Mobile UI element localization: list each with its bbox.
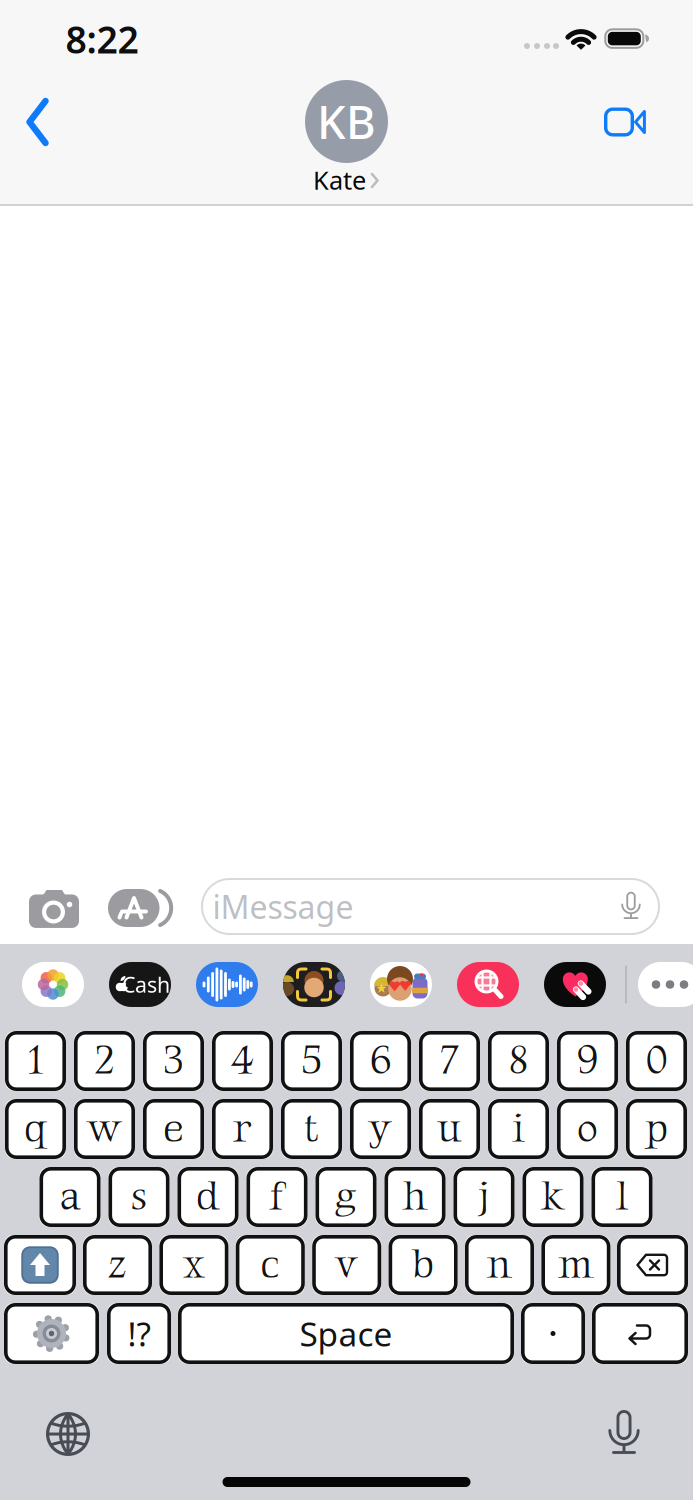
button[interactable]: p xyxy=(626,1099,687,1159)
button[interactable]: i xyxy=(488,1099,549,1159)
staticText: 4 xyxy=(230,1036,255,1086)
button[interactable]: 0 xyxy=(626,1031,687,1091)
button[interactable]: Photos xyxy=(22,962,84,1007)
button[interactable]: 4 xyxy=(212,1031,273,1091)
button[interactable]: !? xyxy=(107,1303,171,1364)
staticText: 1 xyxy=(27,1036,43,1086)
button[interactable]: Digital Touch xyxy=(544,962,606,1007)
staticText: 3 xyxy=(163,1036,184,1086)
button[interactable]: h xyxy=(384,1167,445,1227)
button[interactable]: g xyxy=(315,1167,376,1227)
button[interactable]: c xyxy=(236,1235,305,1295)
button[interactable]: 7 xyxy=(419,1031,480,1091)
button[interactable]: 2 xyxy=(74,1031,135,1091)
button[interactable]: n xyxy=(465,1235,534,1295)
staticText: c xyxy=(260,1240,280,1290)
button[interactable]: l xyxy=(591,1167,652,1227)
button[interactable]: v xyxy=(312,1235,381,1295)
staticText: Kate xyxy=(313,163,366,197)
staticText: u xyxy=(437,1104,461,1154)
button[interactable]: Settings xyxy=(4,1303,99,1364)
staticText: s xyxy=(130,1172,147,1222)
button[interactable]: u xyxy=(419,1099,480,1159)
staticText: e xyxy=(163,1104,184,1154)
button[interactable]: Apps xyxy=(108,889,176,927)
staticText: !? xyxy=(127,1311,150,1356)
button[interactable]: o xyxy=(557,1099,618,1159)
staticText: 7 xyxy=(439,1036,459,1086)
button[interactable]: b xyxy=(389,1235,458,1295)
button[interactable]: w xyxy=(74,1099,135,1159)
button[interactable]: Dictate xyxy=(609,1409,639,1457)
button[interactable]: More apps xyxy=(638,962,693,1007)
button[interactable]: d xyxy=(177,1167,238,1227)
button[interactable]: Shift xyxy=(4,1235,76,1295)
staticText: l xyxy=(616,1172,628,1222)
button[interactable]: Next keyboard xyxy=(46,1412,90,1456)
button[interactable]: 3 xyxy=(143,1031,204,1091)
button[interactable]: 9 xyxy=(557,1031,618,1091)
button[interactable]: Kate, conversation details xyxy=(298,80,394,192)
staticText: r xyxy=(233,1104,252,1154)
button[interactable]: a xyxy=(39,1167,100,1227)
button[interactable]: Music xyxy=(196,962,258,1007)
button[interactable]: 6 xyxy=(350,1031,411,1091)
button[interactable]: Space xyxy=(178,1303,514,1364)
staticText: 9 xyxy=(576,1036,598,1086)
button[interactable]: Delete xyxy=(617,1235,688,1295)
button[interactable]: t xyxy=(281,1099,342,1159)
staticText: 2 xyxy=(94,1036,114,1086)
button[interactable]: Camera xyxy=(29,888,79,928)
button[interactable]: j xyxy=(453,1167,514,1227)
staticText: n xyxy=(486,1240,512,1290)
staticText: 5 xyxy=(301,1036,322,1086)
staticText: 0 xyxy=(645,1036,667,1086)
button[interactable]: s xyxy=(108,1167,169,1227)
button[interactable]: Apple Cash xyxy=(109,962,171,1007)
staticText: o xyxy=(577,1104,598,1154)
button[interactable]: Memoji Stickers xyxy=(370,962,432,1007)
staticText: i xyxy=(512,1104,525,1154)
button[interactable]: FaceTime xyxy=(604,107,646,136)
staticText: m xyxy=(558,1240,594,1290)
staticText: 6 xyxy=(369,1036,391,1086)
button[interactable]: z xyxy=(83,1235,152,1295)
staticText: p xyxy=(645,1104,668,1154)
button[interactable]: q xyxy=(5,1099,66,1159)
staticText: k xyxy=(541,1172,565,1222)
staticText: d xyxy=(196,1172,220,1222)
button[interactable]: Period xyxy=(521,1303,585,1364)
staticText: j xyxy=(478,1172,490,1222)
staticText: KB xyxy=(317,91,376,152)
staticText: g xyxy=(335,1172,357,1222)
staticText: Space xyxy=(299,1311,392,1356)
button[interactable]: x xyxy=(159,1235,228,1295)
button[interactable]: 1 xyxy=(5,1031,66,1091)
staticText: q xyxy=(24,1104,47,1154)
button[interactable]: y xyxy=(350,1099,411,1159)
button[interactable]: iMessage text field xyxy=(201,878,660,935)
staticText: t xyxy=(304,1104,319,1154)
button[interactable]: f xyxy=(246,1167,307,1227)
button[interactable]: Back xyxy=(25,97,51,147)
button[interactable]: 5 xyxy=(281,1031,342,1091)
staticText: f xyxy=(269,1172,285,1222)
button[interactable]: 8 xyxy=(488,1031,549,1091)
staticText: x xyxy=(184,1240,204,1290)
button[interactable]: Images xyxy=(457,962,519,1007)
staticText: h xyxy=(402,1172,427,1222)
button[interactable]: Memoji xyxy=(283,962,345,1007)
staticText: y xyxy=(370,1104,391,1154)
button[interactable]: m xyxy=(541,1235,610,1295)
staticText: z xyxy=(108,1240,127,1290)
button[interactable]: e xyxy=(143,1099,204,1159)
staticText: v xyxy=(336,1240,357,1290)
button[interactable]: r xyxy=(212,1099,273,1159)
staticText: b xyxy=(412,1240,435,1290)
button[interactable]: k xyxy=(522,1167,583,1227)
button[interactable]: Return xyxy=(592,1303,688,1364)
staticText: 8:22 xyxy=(65,14,138,64)
staticText: Cash xyxy=(122,970,170,999)
staticText: a xyxy=(59,1172,81,1222)
staticText: iMessage xyxy=(212,885,353,928)
